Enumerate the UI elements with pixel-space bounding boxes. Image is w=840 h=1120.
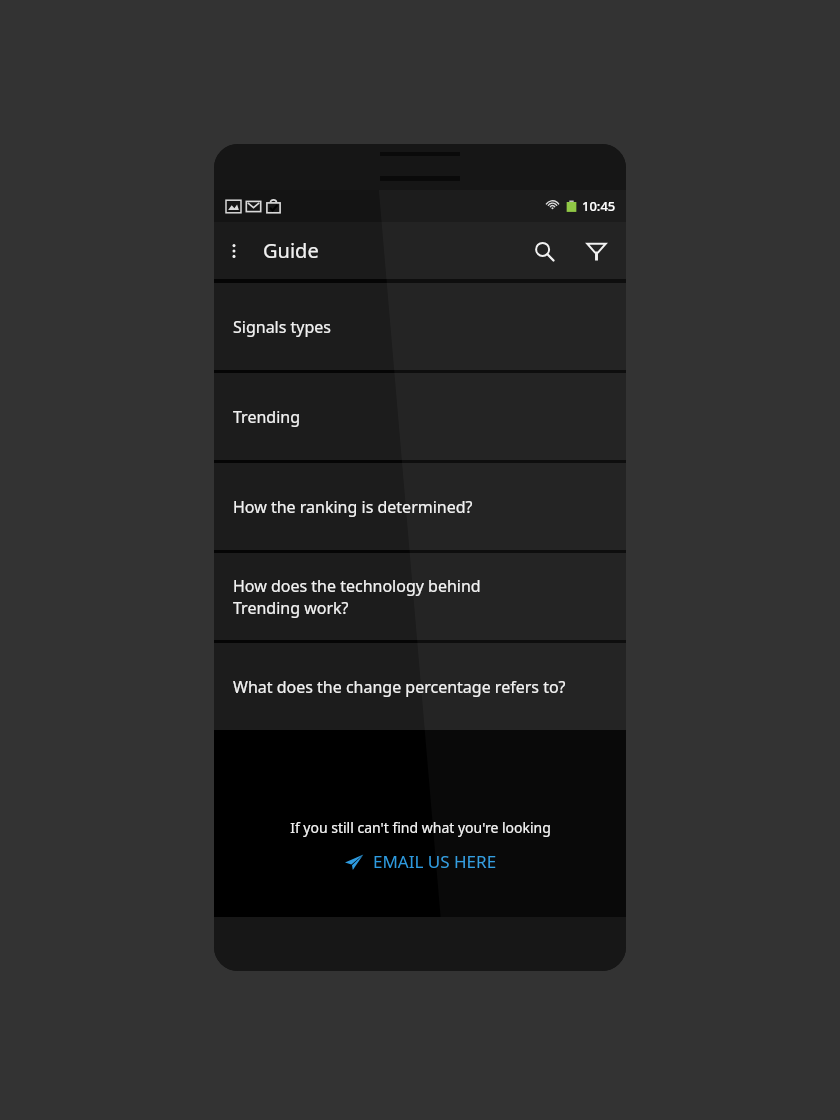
staticText: What does the change percentage refers t… [233,676,566,698]
button[interactable]: More options [214,222,254,279]
staticText: EMAIL US HERE [373,850,497,873]
button[interactable]: Signals types [214,283,626,370]
staticText: Signals types [233,316,332,338]
button[interactable]: How the ranking is determined? [214,463,626,550]
button[interactable]: What does the change percentage refers t… [214,643,626,730]
button[interactable]: How does the technology behind Trending … [214,553,626,640]
button[interactable]: EMAIL US HERE [336,846,505,877]
button[interactable]: Trending [214,373,626,460]
staticText: How does the technology behind Trending … [233,575,481,619]
staticText: 10:45 [582,197,616,215]
staticText: If you still can't find what you're look… [290,818,551,837]
staticText: Guide [263,237,319,264]
staticText: Trending [233,406,300,428]
button[interactable]: Search [518,225,570,277]
staticText: How the ranking is determined? [233,496,473,518]
button[interactable]: Filter [570,225,622,277]
